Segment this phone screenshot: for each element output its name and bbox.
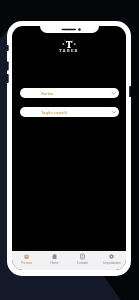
- button[interactable]: Contatti: [68, 251, 97, 270]
- staticText: Taglio capelli: [41, 109, 67, 115]
- button[interactable]: Taglio capelli: [20, 107, 119, 117]
- button[interactable]: Barba: [20, 88, 119, 98]
- staticText: Barba: [41, 90, 54, 96]
- staticText: Contatti: [77, 261, 88, 265]
- staticText: Impostazioni: [103, 261, 121, 265]
- button[interactable]: Prenota: [12, 251, 40, 270]
- button[interactable]: Impostazioni: [97, 251, 126, 270]
- staticText: T: [66, 38, 73, 51]
- staticText: Prenota: [21, 261, 32, 265]
- staticText: TABER: [59, 48, 79, 53]
- button[interactable]: Home: [40, 251, 68, 270]
- staticText: Home: [50, 261, 59, 265]
